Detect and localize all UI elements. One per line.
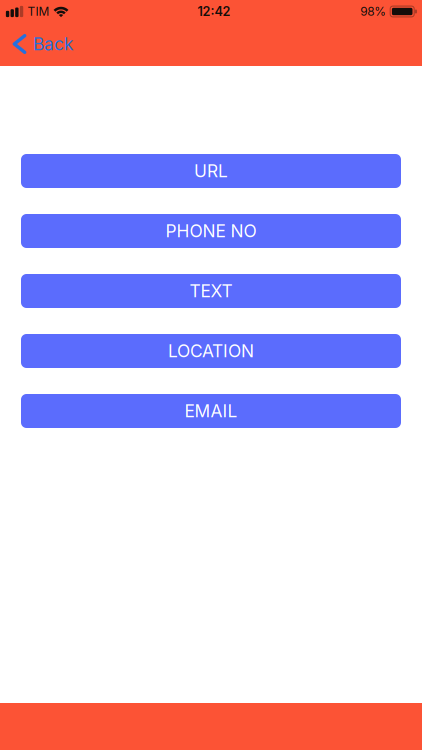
button[interactable]: URL [21,154,401,188]
staticText: TIM [28,4,50,19]
staticText: 12:42 [198,4,231,19]
staticText: LOCATION [168,340,254,361]
staticText: PHONE NO [165,220,256,241]
staticText: TEXT [189,280,232,301]
button[interactable]: TEXT [21,274,401,308]
button[interactable]: EMAIL [21,394,401,428]
button[interactable]: Back [0,22,84,65]
staticText: URL [194,160,228,181]
button[interactable]: PHONE NO [21,214,401,248]
staticText: 98% [360,4,386,19]
staticText: Back [33,33,74,54]
staticText: EMAIL [184,400,237,421]
button[interactable]: LOCATION [21,334,401,368]
